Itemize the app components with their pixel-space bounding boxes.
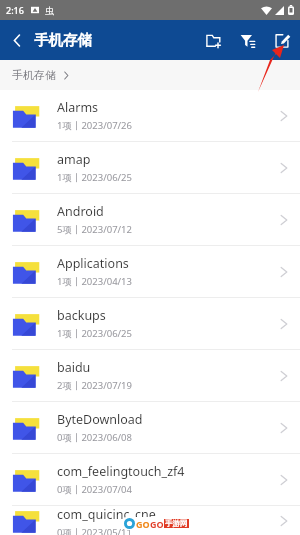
button[interactable]: New folder [196, 20, 230, 60]
button[interactable]: baidu [0, 350, 300, 402]
button[interactable]: com_quicinc_cne [0, 506, 300, 535]
staticText: 2项丨2023/07/19 [57, 379, 132, 392]
staticText: 0项丨2023/06/08 [57, 431, 132, 444]
button[interactable]: Edit [264, 20, 300, 60]
staticText: 手机存储 [12, 68, 56, 82]
button[interactable]: Back [0, 20, 34, 60]
staticText: 0项丨2023/07/04 [57, 483, 132, 496]
staticText: GO [150, 518, 164, 530]
button[interactable]: Applications [0, 246, 300, 298]
button[interactable]: backups [0, 298, 300, 350]
staticText: com_quicinc_cne [57, 506, 156, 523]
staticText: 1项丨2023/06/25 [57, 327, 132, 340]
staticText: 1项丨2023/06/25 [57, 171, 132, 184]
button[interactable]: 手机存储 [12, 68, 56, 82]
button[interactable]: amap [0, 142, 300, 194]
staticText: 手机存储 [34, 31, 92, 49]
staticText: 1项丨2023/07/26 [57, 119, 132, 132]
staticText: backups [57, 307, 106, 324]
staticText: baidu [57, 359, 91, 376]
button[interactable]: Filter [230, 20, 264, 60]
staticText: amap [57, 151, 91, 168]
staticText: com_feelingtouch_zf4 [57, 463, 185, 480]
staticText: GO [136, 518, 150, 530]
staticText: Android [57, 203, 104, 220]
staticText: 2:16 [6, 4, 24, 16]
button[interactable]: com_feelingtouch_zf4 [0, 454, 300, 506]
button[interactable]: ByteDownload [0, 402, 300, 454]
staticText: 1项丨2023/04/13 [57, 275, 132, 288]
button[interactable]: Android [0, 194, 300, 246]
staticText: 手游网 [165, 519, 188, 528]
button[interactable]: Alarms [0, 90, 300, 142]
staticText: Alarms [57, 99, 99, 116]
staticText: 5项丨2023/07/12 [57, 223, 132, 236]
staticText: Applications [57, 255, 129, 272]
staticText: ByteDownload [57, 411, 143, 428]
staticText: 虫 [45, 5, 54, 16]
staticText: 0项丨2023/05/11 [57, 526, 132, 535]
